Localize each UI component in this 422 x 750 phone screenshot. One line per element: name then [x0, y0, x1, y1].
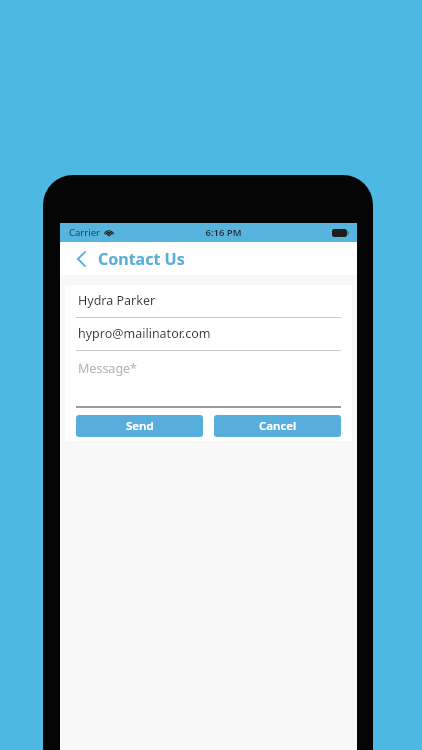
- staticText: Carrier: [69, 226, 100, 239]
- staticText: Send: [126, 418, 154, 434]
- button[interactable]: Cancel: [214, 415, 341, 437]
- staticText: Cancel: [259, 418, 297, 434]
- button[interactable]: Hydra Parker: [65, 285, 352, 318]
- button[interactable]: hypro@mailinator.com: [65, 318, 352, 351]
- staticText: Hydra Parker: [78, 292, 156, 309]
- staticText: hypro@mailinator.com: [78, 325, 211, 342]
- button[interactable]: Back: [68, 246, 94, 272]
- staticText: Contact Us: [98, 248, 185, 270]
- button[interactable]: Message*: [65, 351, 352, 408]
- staticText: 6:16 PM: [205, 226, 242, 239]
- button[interactable]: Send: [76, 415, 203, 437]
- staticText: Message*: [78, 360, 138, 377]
